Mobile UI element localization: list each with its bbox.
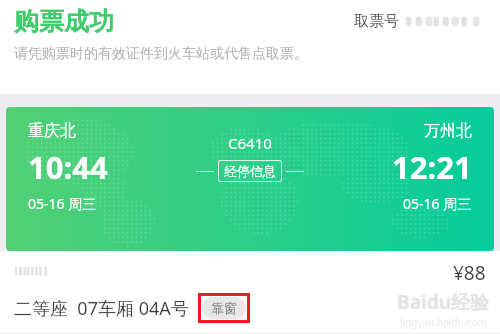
staticText: 靠窗 [211, 300, 237, 316]
staticText: 05-16 周三 [403, 194, 472, 213]
other: Baidu Jingyan watermark [397, 289, 490, 329]
staticText: ¥88 [453, 260, 486, 286]
staticText: 05-16 周三 [28, 194, 97, 213]
staticText: 重庆北 [28, 121, 76, 141]
button[interactable]: 经停信息 [218, 160, 282, 182]
staticText: 12:21 [392, 146, 472, 188]
staticText: 请凭购票时的有效证件到火车站或代售点取票。 [14, 45, 308, 63]
staticText: Baidu经验 [397, 289, 490, 315]
staticText: jingyan.baidu.com [400, 315, 487, 329]
staticText: 取票号 [354, 12, 399, 31]
staticText: 经停信息 [224, 163, 276, 179]
staticText: C6410 [228, 133, 272, 153]
button[interactable]: 靠窗 [202, 297, 246, 319]
staticText: 万州北 [424, 121, 472, 141]
staticText: 购票成功 [14, 6, 114, 37]
staticText: 二等座 07车厢 04A号 [14, 296, 189, 321]
staticText: 10:44 [28, 146, 108, 188]
